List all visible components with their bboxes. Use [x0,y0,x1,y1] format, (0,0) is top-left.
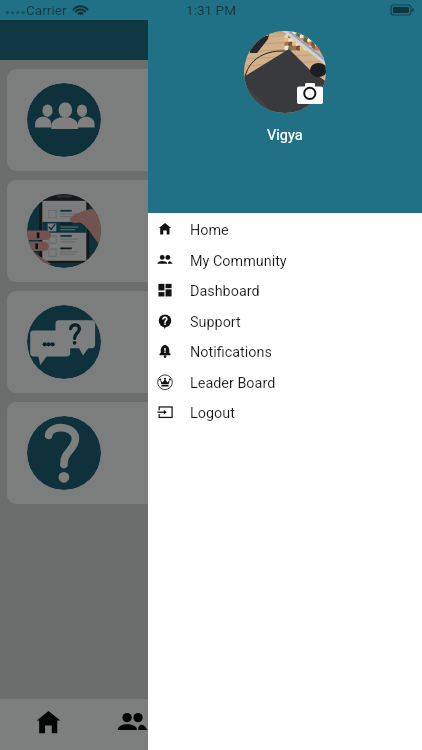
button[interactable]: Notifications [148,337,422,367]
button[interactable]: My Community [90,699,174,750]
staticText: Vigya [267,126,303,143]
button[interactable]: Change profile photo [244,31,326,113]
button[interactable]: Take photo [297,83,323,104]
button[interactable] [7,291,415,393]
staticText: My Community [190,253,287,270]
staticText: Home [190,222,229,239]
button[interactable]: Home [6,699,90,750]
button: Change profile photo [148,0,422,750]
button[interactable]: Logout [148,398,422,428]
button[interactable]: Support [148,307,422,337]
button[interactable] [7,402,415,504]
button[interactable] [7,180,415,282]
button[interactable] [7,69,415,171]
button[interactable]: Dashboard [148,276,422,306]
button[interactable]: My Community [148,246,422,276]
staticText: Carrier [26,2,67,18]
staticText: Dashboard [190,283,260,300]
staticText: Logout [190,405,235,422]
button[interactable]: Home [148,215,422,245]
staticText: Notifications [190,344,272,361]
staticText: Leader Board [190,375,276,392]
staticText: 1:31 PM [186,2,237,18]
staticText: Support [190,314,241,331]
button[interactable]: Leader Board [148,368,422,398]
